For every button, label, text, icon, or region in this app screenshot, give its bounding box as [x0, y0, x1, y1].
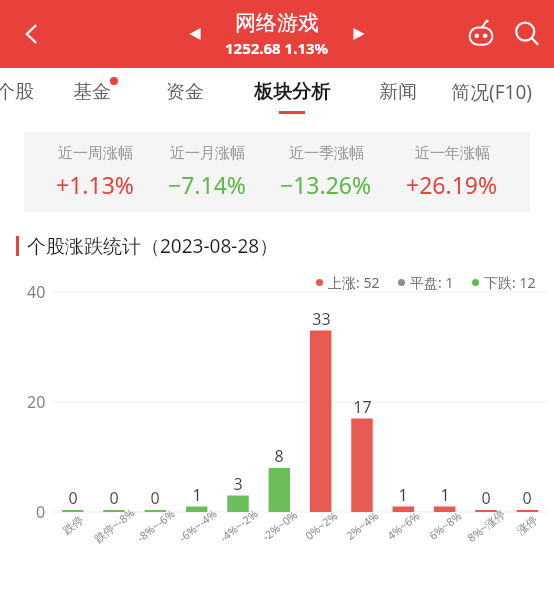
staticText: 跌停	[60, 513, 86, 537]
button[interactable]: 近一年涨幅	[404, 144, 500, 200]
button[interactable]: AI assistant	[458, 11, 504, 57]
button[interactable]: 板块分析	[230, 68, 354, 125]
button[interactable]: Previous sector	[175, 14, 215, 54]
staticText: 涨停	[514, 513, 540, 537]
staticText: 个股涨跌统计（2023-08-28）	[27, 233, 279, 259]
staticText: 1	[398, 484, 408, 506]
staticText: 1	[440, 484, 450, 506]
staticText: 资金	[166, 80, 204, 104]
staticText: 0%~2%	[301, 508, 341, 543]
staticText: 0	[150, 487, 160, 509]
staticText: 新闻	[379, 80, 417, 104]
staticText: 上涨: 52	[328, 273, 380, 292]
staticText: -4%~-2%	[216, 506, 261, 545]
staticText: 下跌: 12	[484, 273, 536, 292]
staticText: 板块分析	[254, 80, 330, 104]
staticText: 近一季涨幅	[289, 144, 364, 163]
button[interactable]: 简况(F10)	[442, 68, 540, 125]
button[interactable]: 个股	[0, 68, 44, 125]
staticText: 3	[233, 473, 243, 495]
button[interactable]: Back	[8, 10, 56, 58]
button[interactable]: 新闻	[354, 68, 442, 125]
staticText: -6%~-4%	[175, 506, 220, 545]
staticText: 8	[274, 445, 284, 467]
button[interactable]: Next sector	[339, 14, 379, 54]
staticText: +1.13%	[56, 169, 134, 200]
staticText: 6%~8%	[425, 508, 465, 543]
staticText: 平盘: 1	[410, 273, 454, 292]
staticText: 20	[27, 391, 46, 413]
staticText: 0	[481, 487, 491, 509]
button[interactable]: 近一月涨幅	[166, 144, 248, 200]
staticText: 1252.68 1.13%	[225, 38, 329, 58]
staticText: 4%~6%	[383, 508, 423, 543]
staticText: −13.26%	[280, 169, 372, 200]
staticText: 0	[522, 487, 532, 509]
staticText: 0	[68, 487, 78, 509]
staticText: +26.19%	[406, 169, 498, 200]
staticText: 个股	[0, 80, 34, 104]
staticText: 33	[312, 308, 331, 330]
staticText: 基金	[73, 80, 111, 104]
button[interactable]: 近一季涨幅	[278, 144, 374, 200]
button[interactable]: 近一周涨幅	[54, 144, 136, 200]
button[interactable]: 资金	[140, 68, 230, 125]
staticText: 近一年涨幅	[415, 144, 490, 163]
staticText: −7.14%	[168, 169, 246, 200]
staticText: -8%~-6%	[133, 506, 178, 545]
staticText: 网络游戏	[235, 10, 319, 36]
staticText: 0	[36, 501, 46, 523]
staticText: 0	[109, 487, 119, 509]
staticText: 1	[192, 484, 202, 506]
staticText: 40	[27, 281, 46, 303]
button[interactable]: 基金	[44, 68, 140, 125]
staticText: -2%~0%	[259, 507, 300, 544]
staticText: 近一月涨幅	[170, 144, 245, 163]
staticText: 跌停~-8%	[90, 505, 138, 546]
staticText: 2%~4%	[342, 508, 382, 543]
button[interactable]: Search	[504, 11, 550, 57]
staticText: 近一周涨幅	[58, 144, 133, 163]
staticText: 简况(F10)	[451, 79, 532, 105]
staticText: 17	[353, 396, 372, 418]
staticText: 8%~涨停	[464, 506, 508, 545]
